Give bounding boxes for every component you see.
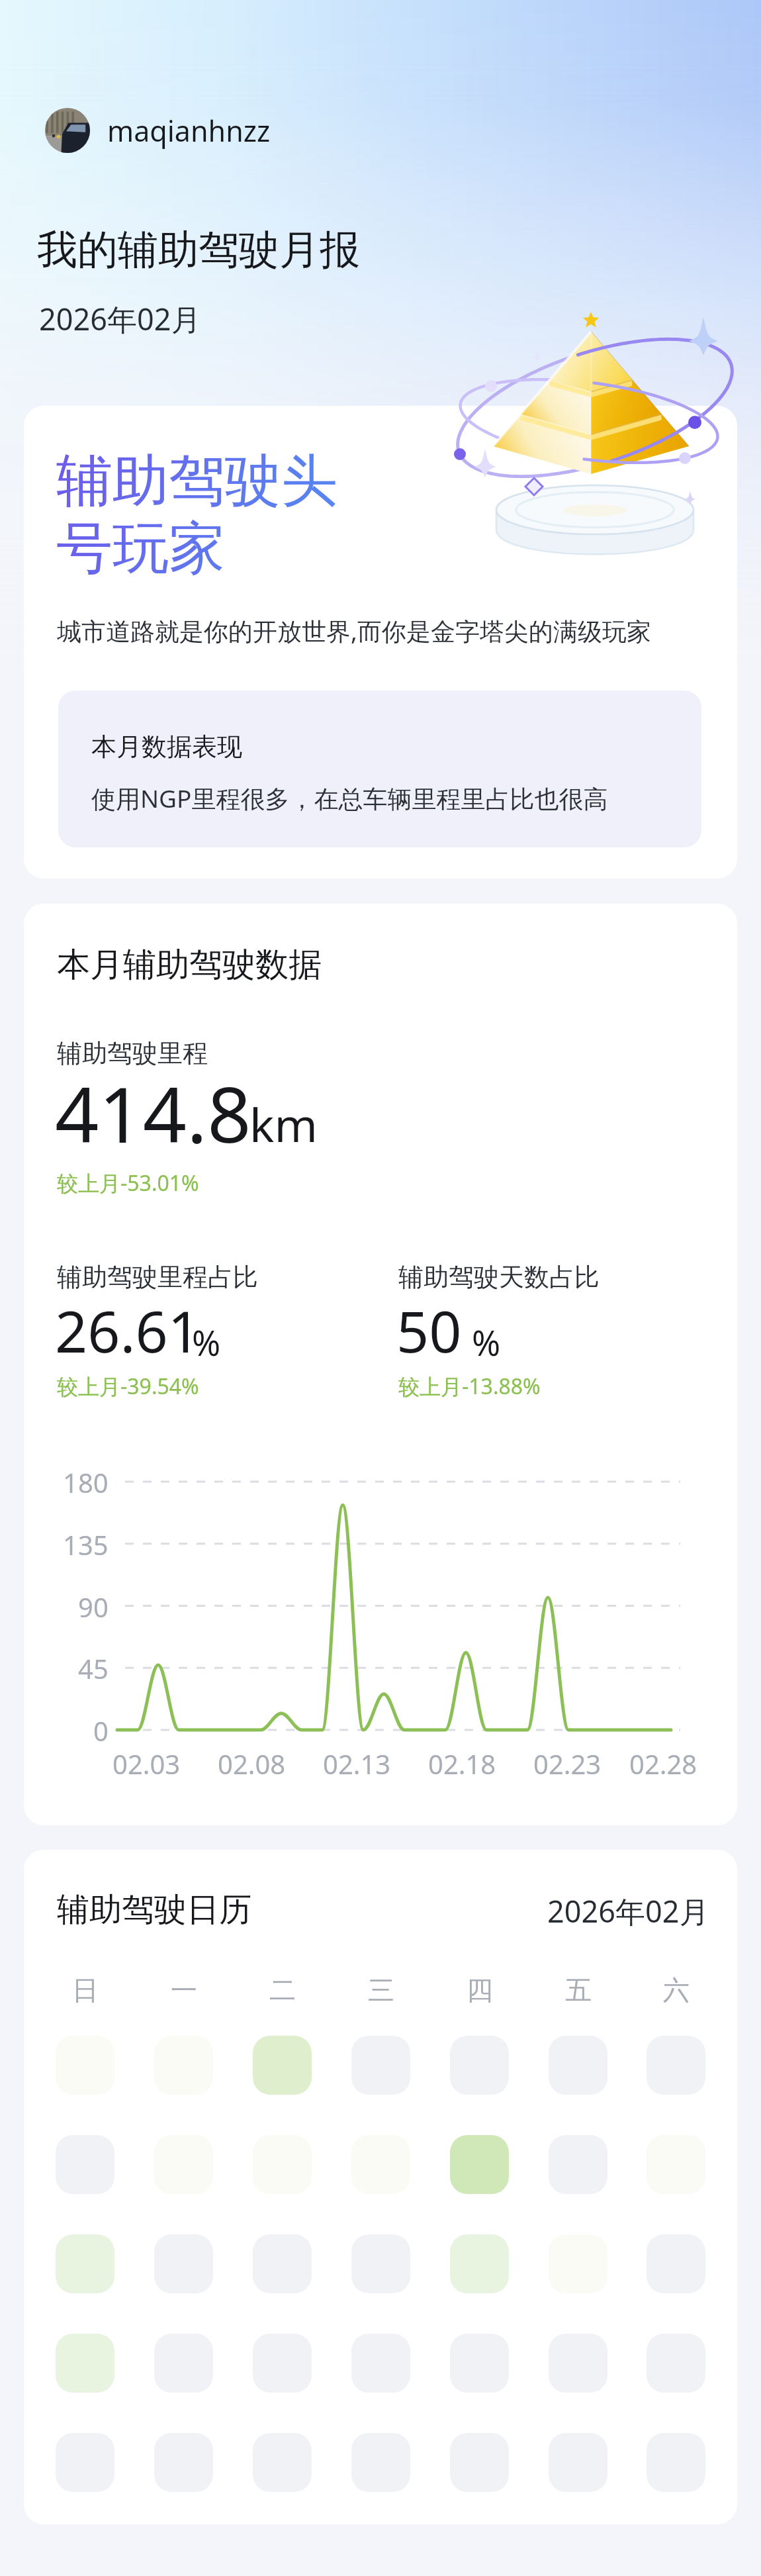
button[interactable] xyxy=(549,2036,607,2095)
staticText: 城市道路就是你的开放世界,而你是金字塔尖的满级玩家 xyxy=(57,614,651,647)
staticText: 五 xyxy=(565,1974,592,2007)
staticText: 本月数据表现 xyxy=(91,731,242,763)
button[interactable] xyxy=(56,2433,114,2492)
button[interactable] xyxy=(351,2234,410,2293)
staticText: 使用NGP里程很多，在总车辆里程里占比也很高 xyxy=(91,781,608,815)
staticText: 02.28 xyxy=(629,1746,697,1782)
button[interactable] xyxy=(154,2234,213,2293)
button[interactable] xyxy=(154,2334,213,2393)
staticText: 50 xyxy=(396,1292,462,1369)
button[interactable] xyxy=(253,2036,312,2095)
staticText: 2026年02月 xyxy=(39,299,201,339)
staticText: 日 xyxy=(72,1974,99,2007)
button[interactable] xyxy=(549,2334,607,2393)
staticText: 辅助驾驶里程 xyxy=(57,1037,208,1069)
button[interactable] xyxy=(450,2433,509,2492)
staticText: 我的辅助驾驶月报 xyxy=(37,224,360,275)
staticText: 四 xyxy=(467,1974,493,2007)
staticText: 二 xyxy=(269,1974,296,2007)
staticText: 较上月-39.54% xyxy=(57,1372,199,1401)
staticText: maqianhnzz xyxy=(107,111,271,150)
staticText: % xyxy=(192,1319,221,1366)
button[interactable] xyxy=(450,2334,509,2393)
button[interactable] xyxy=(351,2036,410,2095)
staticText: 较上月-53.01% xyxy=(57,1169,199,1198)
staticText: 一 xyxy=(171,1974,197,2007)
staticText: 02.08 xyxy=(218,1746,286,1782)
button[interactable] xyxy=(56,2135,114,2194)
staticText: 02.23 xyxy=(533,1746,602,1782)
button[interactable] xyxy=(647,2234,705,2293)
button[interactable] xyxy=(450,2135,509,2194)
button[interactable] xyxy=(253,2234,312,2293)
button[interactable]: Profile photo xyxy=(45,108,271,153)
button[interactable] xyxy=(647,2334,705,2393)
button[interactable] xyxy=(647,2036,705,2095)
button[interactable] xyxy=(647,2433,705,2492)
staticText: 六 xyxy=(663,1974,690,2007)
button[interactable] xyxy=(450,2036,509,2095)
button[interactable] xyxy=(56,2334,114,2393)
staticText: 2026年02月 xyxy=(547,1891,709,1931)
button[interactable] xyxy=(450,2234,509,2293)
staticText: 45 xyxy=(78,1650,109,1686)
button[interactable] xyxy=(253,2334,312,2393)
staticText: 辅助驾驶头 号玩家 xyxy=(56,446,337,584)
button[interactable] xyxy=(549,2433,607,2492)
button[interactable] xyxy=(351,2334,410,2393)
staticText: km xyxy=(249,1092,318,1155)
staticText: 三 xyxy=(368,1974,394,2007)
button[interactable] xyxy=(351,2433,410,2492)
staticText: 135 xyxy=(63,1527,109,1562)
staticText: 辅助驾驶日历 xyxy=(57,1889,251,1931)
staticText: 180 xyxy=(63,1464,109,1500)
staticText: 90 xyxy=(78,1589,109,1625)
button[interactable] xyxy=(351,2135,410,2194)
staticText: 26.61 xyxy=(55,1292,201,1369)
staticText: 辅助驾驶天数占比 xyxy=(398,1261,600,1293)
staticText: 414.8 xyxy=(55,1061,251,1165)
staticText: 本月辅助驾驶数据 xyxy=(57,944,322,986)
button[interactable]: Profile photo xyxy=(45,108,90,153)
staticText: 02.18 xyxy=(428,1746,496,1782)
staticText: 辅助驾驶里程占比 xyxy=(57,1261,258,1293)
button[interactable] xyxy=(253,2433,312,2492)
button[interactable] xyxy=(56,2234,114,2293)
button[interactable] xyxy=(154,2135,213,2194)
button[interactable] xyxy=(549,2135,607,2194)
staticText: % xyxy=(472,1319,501,1366)
staticText: 较上月-13.88% xyxy=(398,1372,541,1401)
staticText: 02.13 xyxy=(323,1746,391,1782)
button[interactable] xyxy=(154,2433,213,2492)
staticText: 0 xyxy=(93,1713,109,1748)
staticText: 02.03 xyxy=(112,1746,181,1782)
